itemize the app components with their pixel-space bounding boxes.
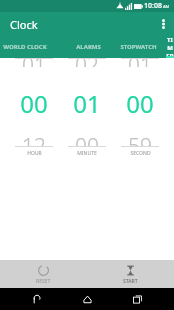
staticText: TIMER — [166, 36, 174, 58]
staticText: 00 — [20, 87, 48, 120]
staticText: ALARMS — [76, 43, 101, 51]
staticText: 00 — [75, 132, 99, 146]
button[interactable]: Home — [74, 288, 100, 310]
staticText: MINUTE — [77, 150, 97, 157]
staticText: 01 — [22, 59, 46, 67]
staticText: SECOND — [130, 150, 151, 157]
button[interactable]: WORLD CLOCK — [0, 36, 58, 58]
button[interactable]: Back — [24, 288, 50, 310]
button[interactable]: 00 — [121, 87, 159, 120]
staticText: 10:08 — [144, 1, 162, 11]
staticText: STOPWATCH — [120, 43, 157, 51]
button[interactable]: STOPWATCH — [110, 36, 166, 58]
staticText: HOUR — [27, 150, 42, 157]
button[interactable]: More options — [152, 12, 174, 36]
staticText: 02 — [75, 59, 99, 67]
staticText: 00 — [126, 87, 154, 120]
button[interactable]: 00 — [15, 87, 53, 120]
button[interactable]: TIMER — [166, 36, 174, 58]
staticText: 01 — [128, 59, 152, 67]
button[interactable]: 01 — [68, 87, 106, 120]
staticText: 01 — [73, 87, 101, 120]
button[interactable]: ALARMS — [66, 36, 110, 58]
staticText: START — [123, 278, 138, 285]
staticText: WORLD CLOCK — [3, 43, 47, 51]
staticText: 59 — [128, 132, 152, 146]
button[interactable]: START — [87, 260, 174, 288]
button[interactable]: Recents — [124, 288, 150, 310]
staticText: RESET — [36, 278, 51, 285]
staticText: 12 — [22, 132, 46, 146]
staticText: AM — [163, 4, 170, 9]
button[interactable]: RESET — [0, 260, 87, 288]
staticText: Clock — [10, 17, 38, 32]
